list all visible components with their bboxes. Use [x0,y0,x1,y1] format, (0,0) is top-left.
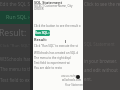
staticText: Click "Run SQL" to ex [0,43,30,49]
staticText: SQL Statement [34,0,63,5]
staticText: Run SQL › [6,13,30,20]
staticText: and edit without [84,67,118,73]
staticText: Click to see the res [84,1,120,7]
staticText: Click "Run SQL" to execute the st [34,44,78,48]
button[interactable]: Run SQL › [35,30,50,36]
staticText: Your Statement [65,83,83,87]
staticText: W3Schools has created an SQL d [34,51,79,55]
staticText: הקלטה הבאה [61,74,80,78]
staticText: ent. [84,76,92,82]
staticText: The menu to the r [0,66,30,72]
staticText: Test field to expe [0,77,30,83]
staticText: ORDER [34,7,44,11]
staticText: w3schools.com [62,78,82,82]
staticText: You are able to resto [34,66,62,70]
staticText: The menu to the right displ [34,56,71,60]
staticText: Test field to experiment wi [34,61,70,65]
staticText: Edit the SQL Statement [0,1,30,7]
staticText: Result: [0,27,27,39]
staticText: SQL Statement [84,41,115,47]
staticText: W3Schools has cr [0,56,30,62]
other: Avatar [76,75,80,79]
staticText: in your browser. [84,58,117,64]
button[interactable]: Run SQL › [0,11,30,24]
staticText: SELECT CustomerName, City [34,4,74,8]
staticText: Result: [34,37,47,42]
staticText: Run SQL › [35,31,50,35]
staticText: Click the button to see the result o [34,24,81,28]
